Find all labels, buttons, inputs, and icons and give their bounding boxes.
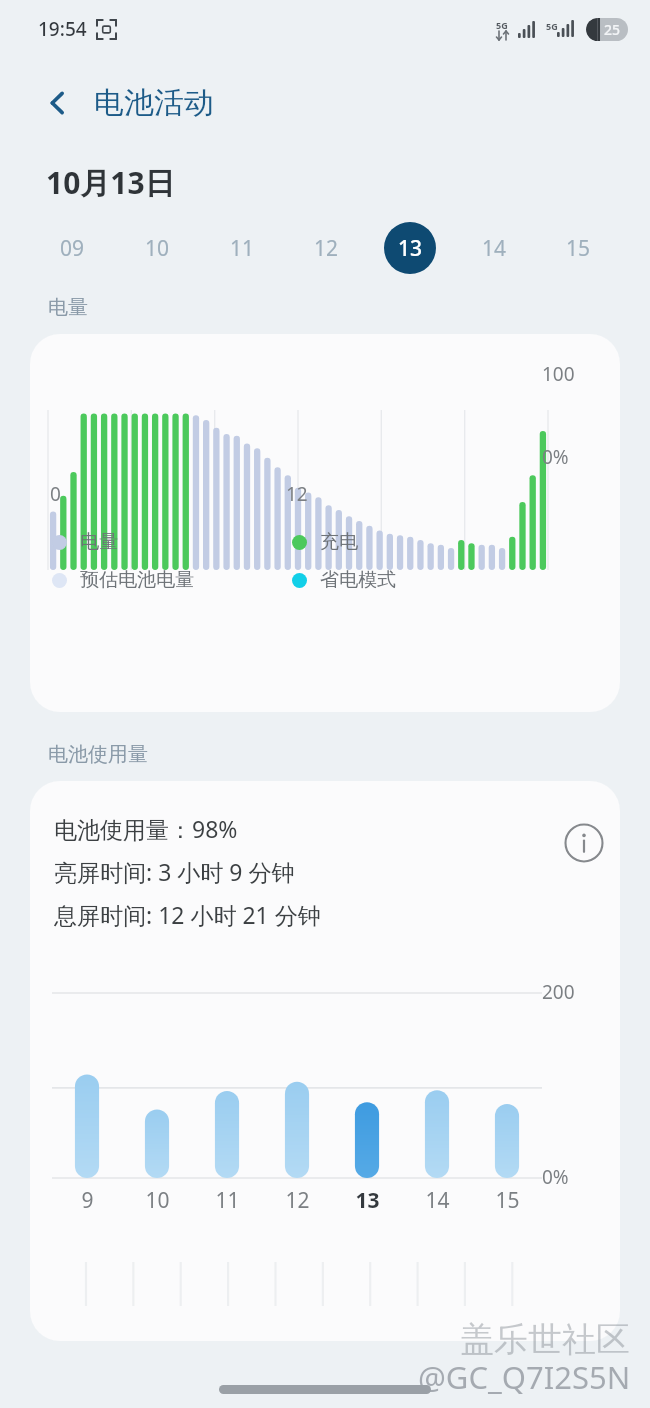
staticText: 10月13日	[46, 162, 175, 203]
button[interactable]: 100	[30, 334, 620, 712]
staticText: 19:54	[38, 16, 87, 42]
button[interactable]: 预估电池电量	[52, 568, 292, 592]
staticText: 12	[314, 234, 339, 263]
staticText: 0%	[542, 444, 569, 470]
staticText: 电量	[80, 530, 118, 554]
staticText: 电池使用量：98%	[54, 813, 238, 844]
staticText: 充电	[320, 530, 358, 554]
staticText: 5G	[496, 19, 508, 31]
staticText: 亮屏时间: 3 小时 9 分钟	[54, 856, 295, 887]
staticText: 15	[495, 1186, 520, 1215]
staticText: 预估电池电量	[80, 568, 194, 592]
button[interactable]: 11	[200, 219, 284, 277]
staticText: 省电模式	[320, 568, 396, 592]
staticText: 0%	[542, 1164, 569, 1190]
staticText: 12	[285, 1186, 310, 1215]
staticText: 5G	[546, 20, 558, 32]
staticText: 电量	[48, 295, 88, 320]
button[interactable]: 省电模式	[292, 568, 492, 592]
button[interactable]: 14	[452, 219, 536, 277]
staticText: 9	[81, 1186, 94, 1215]
button[interactable]: Back	[34, 79, 82, 127]
staticText: 200	[542, 979, 575, 1005]
staticText: 0	[50, 481, 61, 507]
staticText: 10	[145, 1186, 170, 1215]
staticText: 息屏时间: 12 小时 21 分钟	[54, 899, 321, 930]
staticText: 11	[215, 1186, 240, 1215]
button[interactable]: 充电	[292, 530, 492, 554]
button[interactable]: 12	[284, 219, 368, 277]
button[interactable]: 09	[30, 219, 115, 277]
staticText: 15	[566, 234, 591, 263]
staticText: 11	[230, 234, 255, 263]
staticText: 12	[286, 481, 308, 507]
staticText: 14	[425, 1186, 450, 1215]
staticText: 09	[60, 234, 85, 263]
staticText: 100	[542, 361, 575, 387]
staticText: 14	[482, 234, 507, 263]
staticText: 电池使用量	[48, 742, 148, 767]
staticText: @GC_Q7I2S5N	[418, 1356, 631, 1398]
button[interactable]: 电量	[52, 530, 292, 554]
button[interactable]: Information	[556, 815, 612, 871]
button[interactable]: 15	[536, 219, 620, 277]
staticText: 25	[604, 20, 621, 39]
staticText: 盖乐世社区	[460, 1318, 630, 1361]
button[interactable]: 10	[115, 219, 200, 277]
staticText: 13	[398, 234, 423, 263]
button[interactable]: 13	[368, 219, 452, 277]
staticText: 13	[355, 1186, 380, 1215]
button[interactable]: 电池使用量：98%	[30, 781, 620, 1341]
staticText: 电池活动	[94, 84, 214, 122]
staticText: 10	[145, 234, 170, 263]
